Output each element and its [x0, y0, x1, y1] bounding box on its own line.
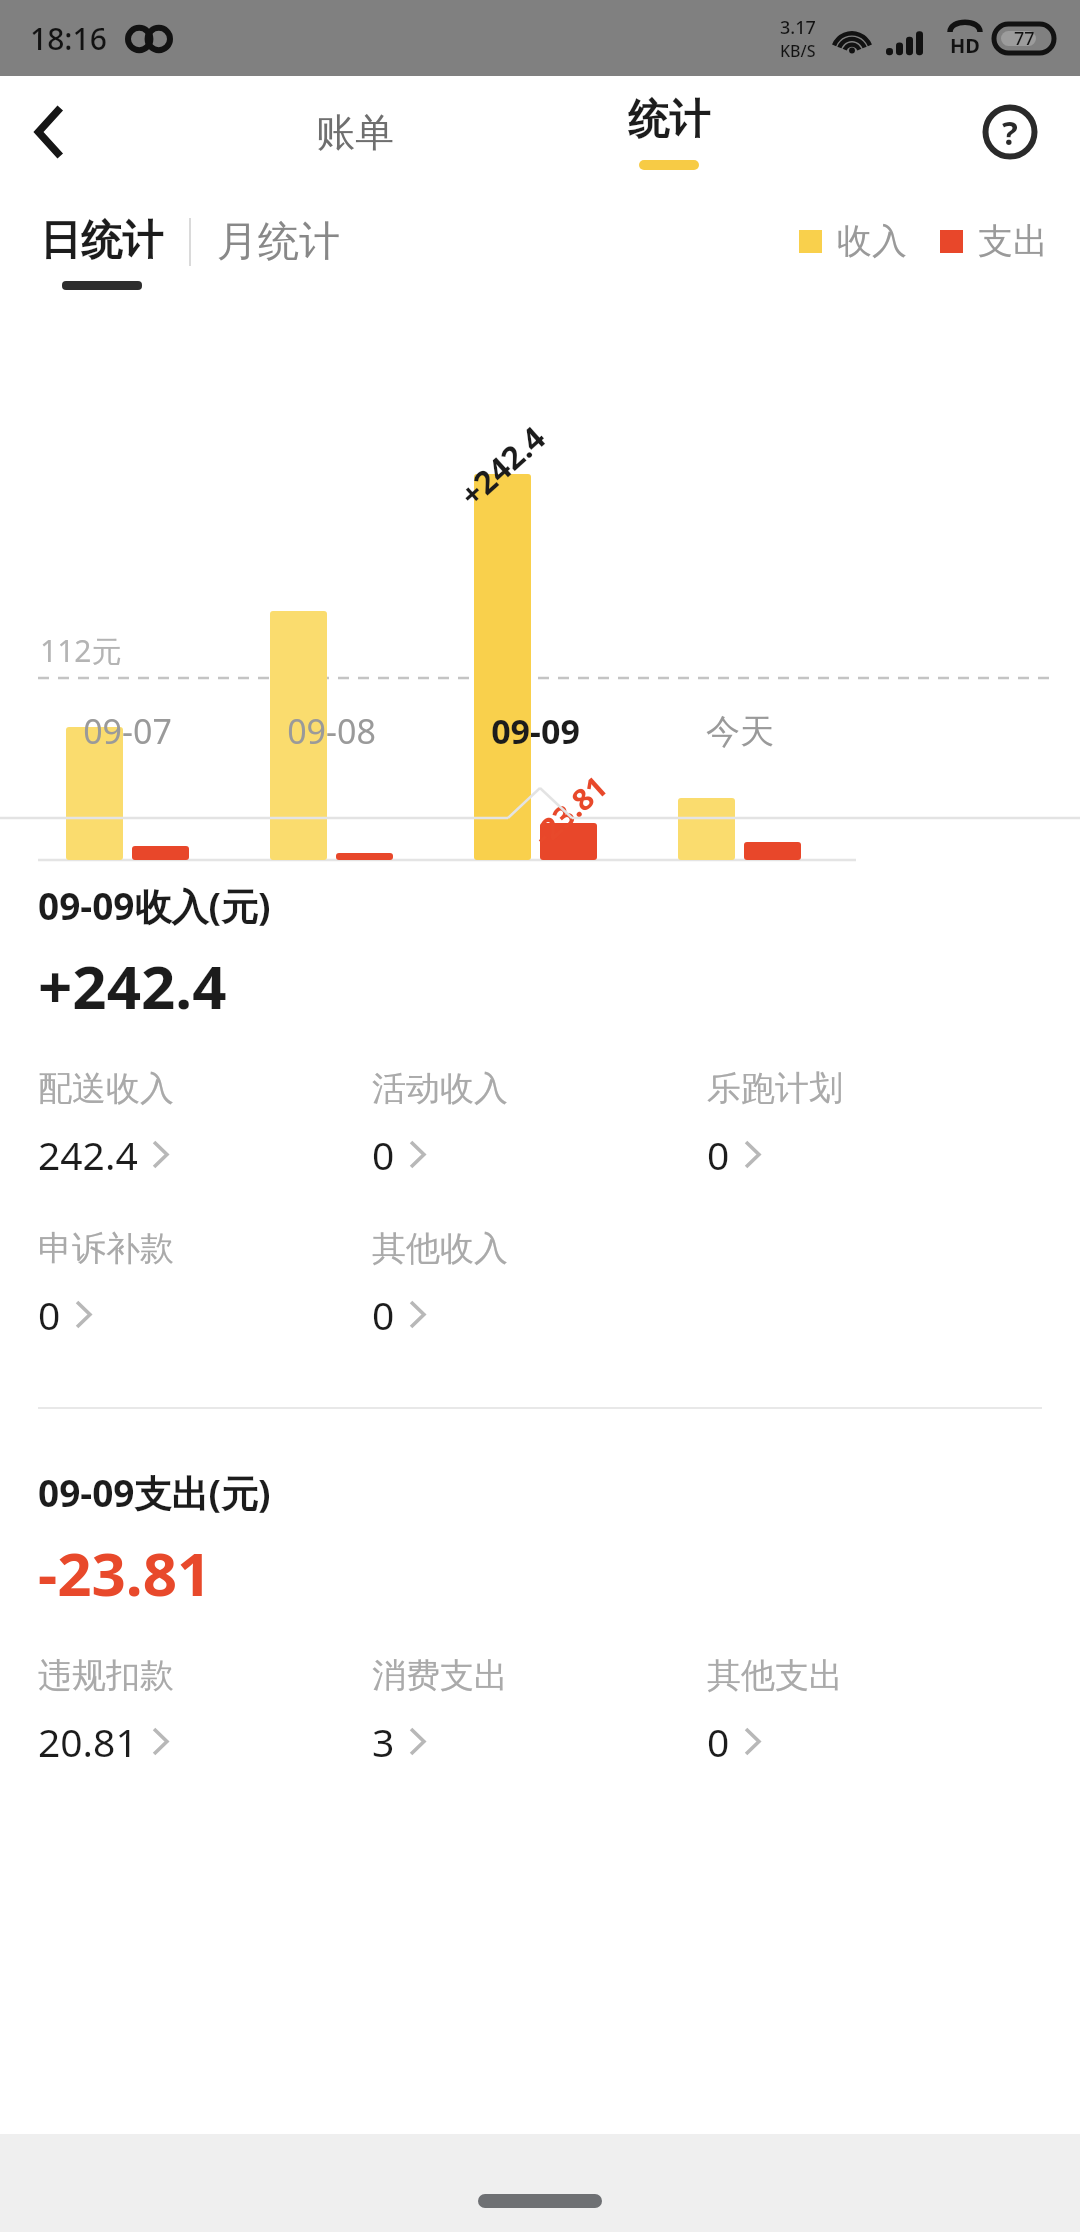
button[interactable]: 09-09	[471, 700, 600, 762]
button[interactable]: 其他支出	[707, 1654, 853, 1774]
staticText: -23.81	[38, 1532, 212, 1614]
staticText: 09-08	[287, 708, 376, 754]
staticText: 0	[707, 1715, 730, 1768]
staticText: KB/S	[780, 40, 816, 62]
button[interactable]: 统计	[604, 90, 734, 174]
staticText: 活动收入	[372, 1067, 508, 1110]
staticText: ?	[1002, 110, 1018, 155]
staticText: 日统计	[40, 215, 163, 267]
staticText: 其他收入	[372, 1227, 508, 1270]
staticText: 支出	[978, 219, 1048, 263]
staticText: 112元	[40, 630, 122, 671]
staticText: 3	[372, 1715, 395, 1768]
button[interactable]: 违规扣款	[38, 1654, 184, 1774]
staticText: 乐跑计划	[707, 1067, 843, 1110]
button[interactable]: 09-08	[267, 700, 396, 762]
staticText: 今天	[706, 710, 774, 753]
staticText: 09-09支出(元)	[38, 1467, 271, 1518]
staticText: 0	[38, 1288, 61, 1341]
staticText: 月统计	[217, 216, 340, 268]
staticText: 09-09	[491, 708, 580, 754]
button[interactable]: 今天	[675, 700, 804, 762]
staticText: 09-09收入(元)	[38, 880, 271, 931]
staticText: HD	[950, 32, 980, 59]
staticText: 违规扣款	[38, 1654, 174, 1697]
staticText: 配送收入	[38, 1067, 174, 1110]
staticText: +242.4	[450, 416, 555, 516]
button[interactable]: 消费支出	[372, 1654, 518, 1774]
staticText: 0	[372, 1288, 395, 1341]
button[interactable]: 申诉补款	[38, 1227, 184, 1347]
staticText: 收入	[837, 219, 907, 263]
button[interactable]: 09-07	[63, 700, 192, 762]
staticText: 09-07	[83, 708, 172, 754]
staticText: 申诉补款	[38, 1227, 174, 1270]
staticText: 18:16	[30, 18, 107, 59]
button[interactable]: 账单	[290, 94, 420, 171]
button[interactable]: Help	[970, 92, 1050, 172]
button[interactable]: Back	[0, 82, 100, 182]
button[interactable]: 配送收入	[38, 1067, 184, 1187]
staticText: -23.81	[523, 766, 616, 855]
button[interactable]: 活动收入	[372, 1067, 518, 1187]
button[interactable]: 月统计	[211, 216, 346, 268]
staticText: 3.17	[780, 15, 816, 40]
button[interactable]: 其他收入	[372, 1227, 518, 1347]
staticText: 统计	[628, 94, 710, 146]
staticText: 账单	[316, 108, 394, 157]
button[interactable]: 乐跑计划	[707, 1067, 853, 1187]
staticText: 0	[372, 1128, 395, 1181]
staticText: 242.4	[38, 1128, 138, 1181]
staticText: 消费支出	[372, 1654, 508, 1697]
staticText: 其他支出	[707, 1654, 843, 1697]
button[interactable]: 日统计	[34, 215, 169, 290]
staticText: +242.4	[38, 945, 227, 1027]
staticText: 20.81	[38, 1715, 138, 1768]
staticText: 77	[1014, 26, 1035, 51]
staticText: 0	[707, 1128, 730, 1181]
